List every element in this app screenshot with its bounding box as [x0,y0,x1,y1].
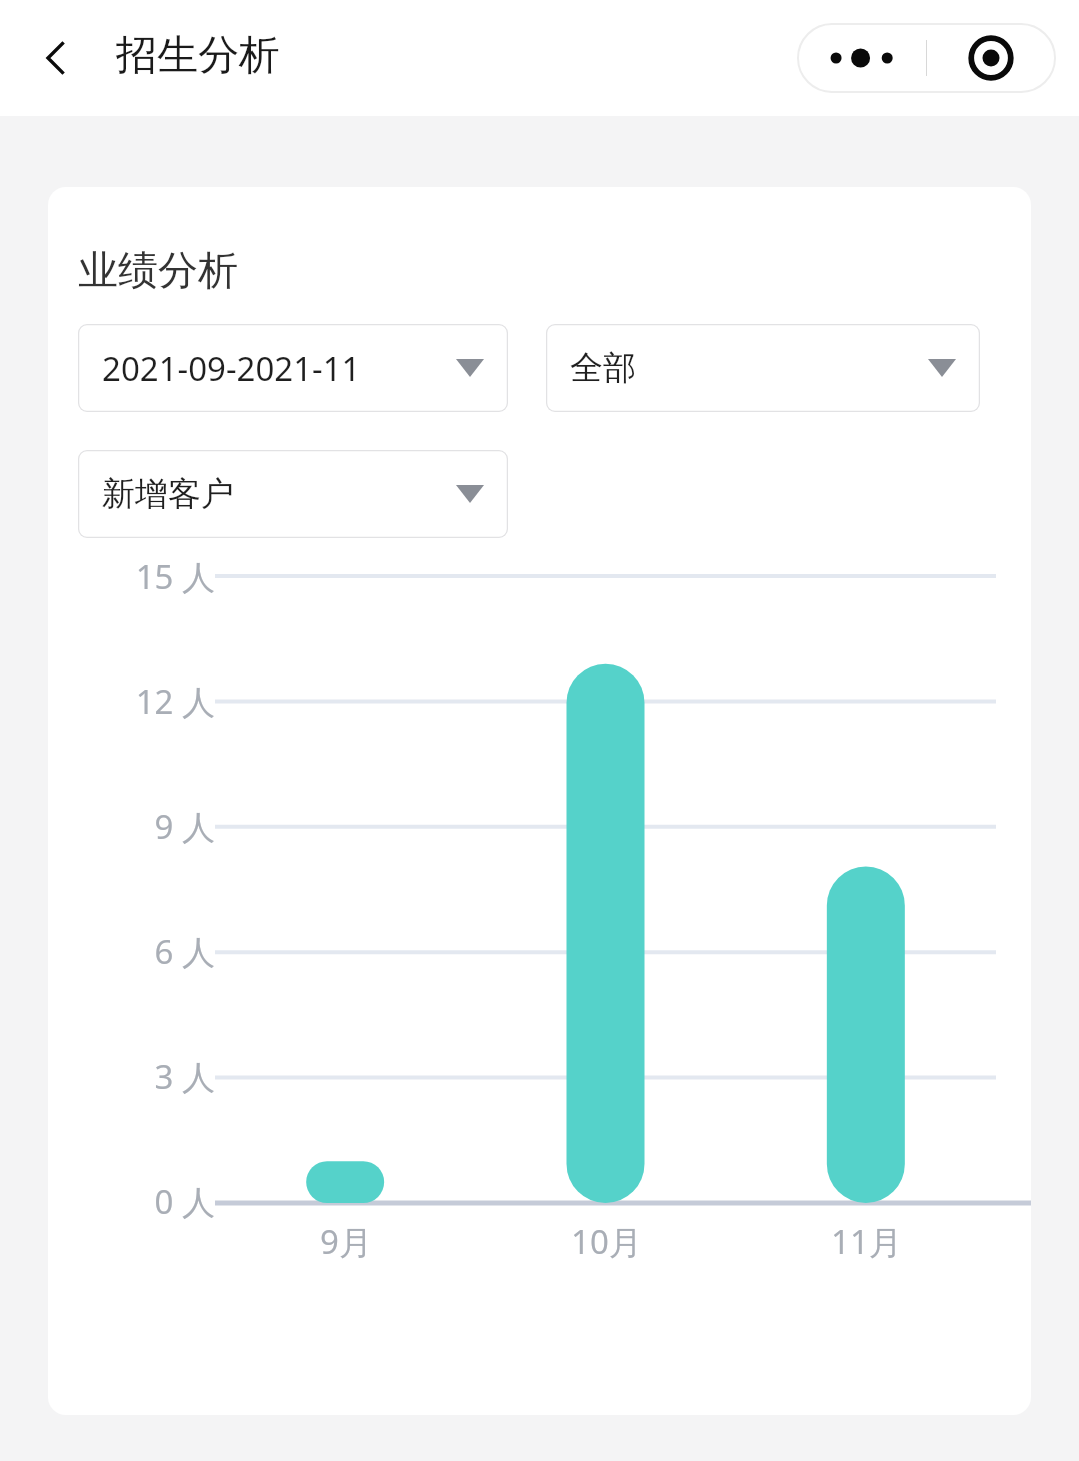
staticText: 10月 [571,1219,642,1264]
button[interactable]: 全部 [546,324,980,412]
button[interactable]: 新增客户 [78,450,508,538]
button[interactable]: More [798,24,926,92]
staticText: 3 人 [154,1054,215,1099]
staticText: 新增客户 [102,473,234,515]
button[interactable]: 2021-09-2021-11 [78,324,508,412]
staticText: 12 人 [135,679,215,724]
staticText: 招生分析 [116,30,280,82]
staticText: 6 人 [154,929,215,974]
staticText: 9 人 [154,804,215,849]
staticText: 9月 [320,1219,372,1264]
staticText: 0 人 [154,1179,215,1224]
staticText: 11月 [831,1219,902,1264]
staticText: 2021-09-2021-11 [102,346,361,391]
button[interactable]: Close [927,24,1055,92]
staticText: 业绩分析 [78,245,238,295]
button[interactable]: Back [20,22,92,94]
staticText: 全部 [570,347,636,389]
staticText: 15 人 [135,554,215,599]
